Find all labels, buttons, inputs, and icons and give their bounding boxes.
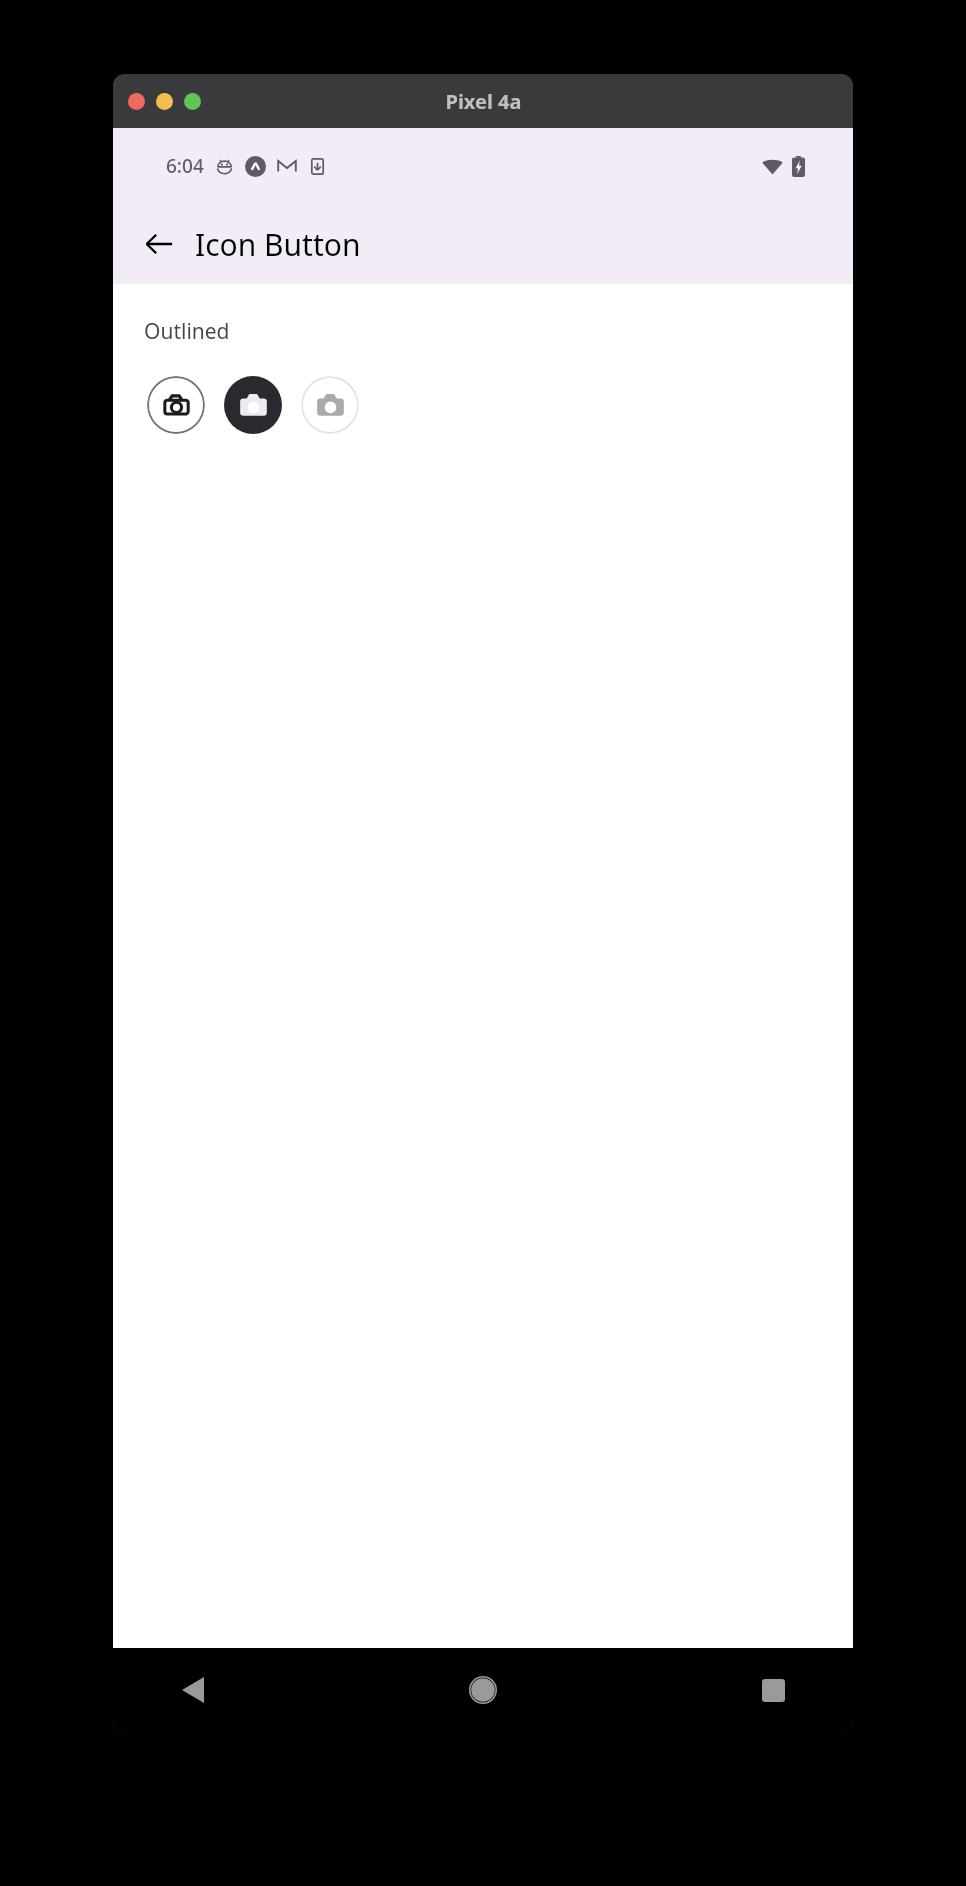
staticText: Icon Button xyxy=(195,224,361,265)
button[interactable]: Home xyxy=(451,1658,515,1722)
button[interactable]: Take photo, disabled xyxy=(301,376,359,434)
button[interactable]: Close xyxy=(128,93,145,110)
button[interactable]: Recent apps xyxy=(741,1658,805,1722)
button[interactable]: Take photo, selected xyxy=(224,376,282,434)
staticText: Pixel 4a xyxy=(445,88,522,115)
button[interactable]: Minimize xyxy=(156,93,173,110)
button[interactable]: Take photo, outlined xyxy=(147,376,205,434)
button[interactable]: Back xyxy=(137,222,181,266)
button[interactable]: Zoom xyxy=(184,93,201,110)
button[interactable]: Back xyxy=(161,1658,225,1722)
staticText: Outlined xyxy=(144,317,230,346)
staticText: 6:04 xyxy=(166,153,204,179)
